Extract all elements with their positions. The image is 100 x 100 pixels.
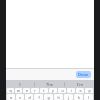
button[interactable]: Key a xyxy=(7,94,15,100)
button[interactable]: Done xyxy=(76,71,91,78)
staticText: d xyxy=(28,95,31,100)
staticText: g xyxy=(47,95,50,100)
button[interactable]: I xyxy=(6,80,34,88)
staticText: t xyxy=(43,88,45,93)
button[interactable]: Key u xyxy=(58,88,66,93)
staticText: r xyxy=(34,88,36,93)
staticText: e xyxy=(26,88,28,93)
button[interactable]: Key t xyxy=(40,88,48,93)
staticText: h xyxy=(57,95,60,100)
button[interactable]: Key i xyxy=(67,88,75,93)
staticText: u xyxy=(61,88,64,93)
staticText: q xyxy=(9,88,12,93)
staticText: a xyxy=(10,95,12,100)
staticText: w xyxy=(17,88,20,93)
staticText: The xyxy=(46,82,53,87)
button[interactable]: Key j xyxy=(64,94,73,100)
button[interactable]: Key l xyxy=(84,94,93,100)
button[interactable]: Key y xyxy=(49,88,57,93)
button[interactable]: Key e xyxy=(23,88,30,93)
button[interactable]: Key r xyxy=(31,88,39,93)
button[interactable]: The xyxy=(35,80,64,88)
button[interactable]: I'm xyxy=(65,80,94,88)
staticText: i xyxy=(71,88,72,93)
staticText: o xyxy=(79,88,82,93)
staticText: k xyxy=(78,95,80,100)
button[interactable]: Key p xyxy=(85,88,93,93)
staticText: f xyxy=(38,95,40,100)
button[interactable]: Key f xyxy=(34,94,43,100)
button[interactable]: Key g xyxy=(44,94,53,100)
staticText: y xyxy=(52,88,54,93)
button[interactable]: Key s xyxy=(16,94,24,100)
button[interactable]: Key h xyxy=(54,94,63,100)
staticText: s xyxy=(19,95,21,100)
staticText: j xyxy=(68,95,69,100)
button[interactable]: Key q xyxy=(7,88,14,93)
button[interactable]: Key o xyxy=(76,88,84,93)
staticText: Done xyxy=(78,72,89,77)
staticText: p xyxy=(88,88,91,93)
staticText: I'm xyxy=(77,82,83,87)
button[interactable]: Key k xyxy=(74,94,83,100)
button[interactable]: Key w xyxy=(15,88,22,93)
staticText: I xyxy=(19,82,21,87)
button[interactable]: Key d xyxy=(25,94,33,100)
staticText: l xyxy=(88,95,89,100)
